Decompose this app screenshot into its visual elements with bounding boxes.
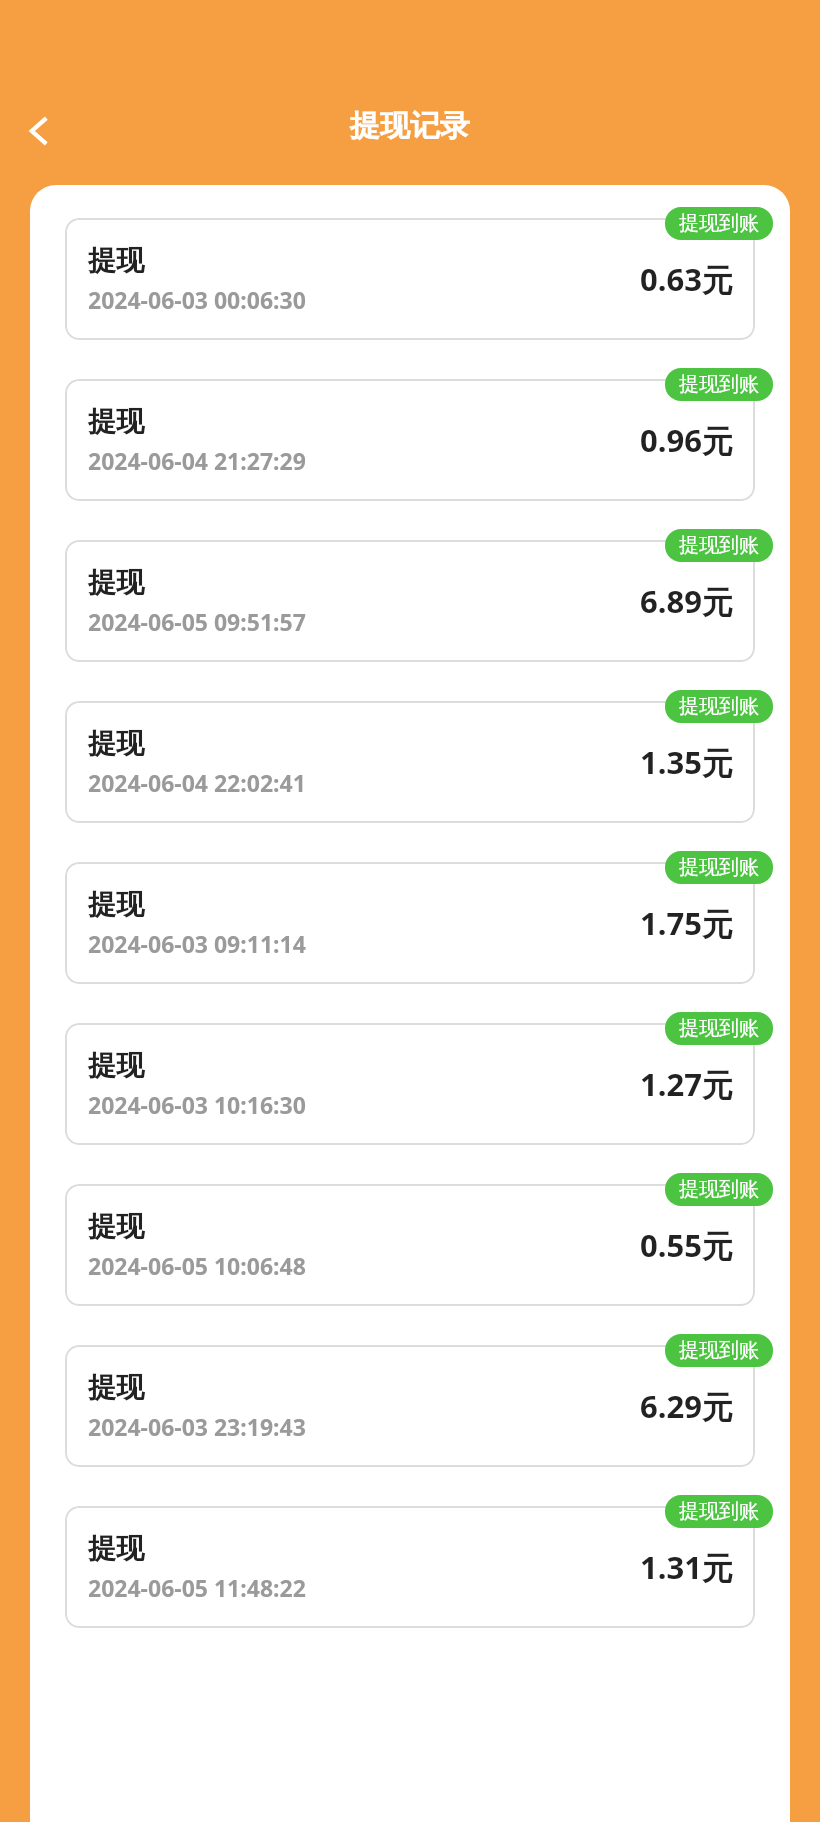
staticText: 2024-06-03 10:16:30 bbox=[88, 1089, 306, 1120]
staticText: 2024-06-03 09:11:14 bbox=[88, 928, 306, 959]
button[interactable]: 提现 bbox=[30, 1334, 790, 1467]
staticText: 1.75元 bbox=[640, 902, 733, 944]
staticText: 提现 bbox=[88, 1048, 144, 1083]
staticText: 提现到账 bbox=[679, 855, 759, 880]
staticText: 1.35元 bbox=[640, 741, 733, 783]
staticText: 提现 bbox=[88, 565, 144, 600]
button[interactable]: 提现 bbox=[30, 1495, 790, 1628]
staticText: 提现到账 bbox=[679, 694, 759, 719]
button[interactable]: 提现 bbox=[30, 690, 790, 823]
staticText: 提现到账 bbox=[679, 211, 759, 236]
staticText: 提现记录 bbox=[0, 107, 820, 145]
staticText: 提现到账 bbox=[679, 1499, 759, 1524]
staticText: 提现 bbox=[88, 1209, 144, 1244]
button[interactable]: 提现 bbox=[30, 207, 790, 340]
staticText: 1.27元 bbox=[640, 1063, 733, 1105]
staticText: 提现到账 bbox=[679, 1016, 759, 1041]
staticText: 提现 bbox=[88, 404, 144, 439]
button[interactable]: 提现 bbox=[30, 368, 790, 501]
staticText: 2024-06-05 10:06:48 bbox=[88, 1250, 306, 1281]
button[interactable]: Back bbox=[8, 100, 70, 162]
staticText: 0.63元 bbox=[640, 258, 733, 300]
staticText: 2024-06-03 23:19:43 bbox=[88, 1411, 306, 1442]
staticText: 2024-06-04 22:02:41 bbox=[88, 767, 306, 798]
staticText: 提现到账 bbox=[679, 1177, 759, 1202]
staticText: 2024-06-03 00:06:30 bbox=[88, 284, 306, 315]
staticText: 0.55元 bbox=[640, 1224, 733, 1266]
staticText: 提现 bbox=[88, 726, 144, 761]
staticText: 提现 bbox=[88, 243, 144, 278]
staticText: 2024-06-04 21:27:29 bbox=[88, 445, 306, 476]
button[interactable]: 提现 bbox=[30, 1173, 790, 1306]
staticText: 2024-06-05 09:51:57 bbox=[88, 606, 306, 637]
staticText: 提现 bbox=[88, 1531, 144, 1566]
button[interactable]: 提现 bbox=[30, 529, 790, 662]
staticText: 0.96元 bbox=[640, 419, 733, 461]
button[interactable]: 提现 bbox=[30, 851, 790, 984]
staticText: 提现到账 bbox=[679, 1338, 759, 1363]
staticText: 提现 bbox=[88, 887, 144, 922]
button[interactable]: 提现 bbox=[30, 1012, 790, 1145]
staticText: 6.29元 bbox=[640, 1385, 733, 1427]
staticText: 2024-06-05 11:48:22 bbox=[88, 1572, 306, 1603]
staticText: 提现 bbox=[88, 1370, 144, 1405]
staticText: 1.31元 bbox=[640, 1546, 733, 1588]
staticText: 提现到账 bbox=[679, 372, 759, 397]
staticText: 提现到账 bbox=[679, 533, 759, 558]
staticText: 6.89元 bbox=[640, 580, 733, 622]
